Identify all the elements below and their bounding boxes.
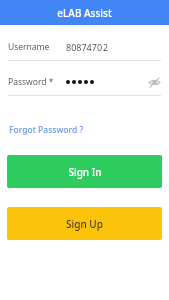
staticText: Password *: [8, 76, 54, 88]
staticText: Forgot Password ?: [9, 124, 84, 136]
staticText: eLAB Assist: [57, 6, 112, 20]
button[interactable]: Sign Up: [7, 207, 162, 240]
staticText: 8087470 2: [66, 41, 109, 53]
button[interactable]: Password *: [0, 74, 169, 96]
staticText: Sign In: [68, 165, 102, 179]
button[interactable]: Show password: [145, 74, 163, 90]
button[interactable]: Username: [0, 39, 169, 61]
button[interactable]: Sign In: [7, 155, 162, 188]
button[interactable]: Forgot Password ?: [8, 122, 85, 138]
staticText: Sign Up: [66, 217, 103, 231]
staticText: Username: [8, 41, 50, 53]
